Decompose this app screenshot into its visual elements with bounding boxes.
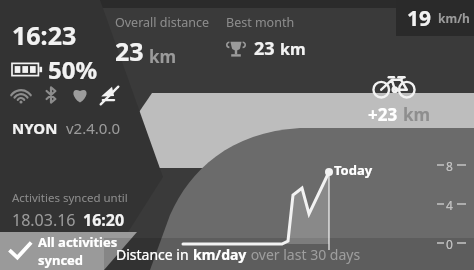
staticText: 18.03.16 — [12, 209, 76, 231]
staticText: Activities synced until — [12, 190, 128, 206]
staticText: km/h — [438, 10, 470, 26]
staticText: 23 — [115, 34, 144, 68]
staticText: +23 — [368, 103, 398, 126]
staticText: 50% — [48, 53, 98, 86]
staticText: 4 — [446, 197, 453, 213]
staticText: All activities — [38, 233, 118, 251]
staticText: Overall distance — [115, 14, 209, 31]
other: Trophy — [226, 39, 246, 59]
staticText: synced — [38, 251, 84, 269]
staticText: 0 — [446, 236, 453, 252]
other: Battery — [12, 61, 42, 78]
staticText: 19 — [407, 4, 432, 33]
staticText: km/day — [193, 245, 247, 264]
other: Bluetooth — [41, 85, 61, 105]
staticText: v2.4.0.0 — [66, 118, 121, 138]
staticText: 23 — [254, 36, 275, 61]
other: Bike — [372, 72, 416, 98]
other: Wi-Fi — [10, 84, 32, 106]
staticText: km — [403, 103, 431, 126]
button[interactable]: All activities — [0, 232, 137, 270]
staticText: Best month — [226, 14, 295, 31]
button[interactable]: 19 — [396, 0, 474, 36]
staticText: 16:20 — [83, 209, 125, 231]
staticText: km — [280, 38, 306, 60]
staticText: NYON — [12, 118, 58, 138]
other: Heart rate — [70, 85, 90, 105]
staticText: 8 — [446, 158, 453, 174]
staticText: Distance in — [116, 245, 193, 264]
staticText: over last 30 days — [247, 245, 361, 264]
other: Satellite — [99, 85, 120, 106]
staticText: Today — [334, 161, 373, 179]
staticText: km — [149, 45, 177, 68]
staticText: 16:23 — [12, 18, 77, 52]
